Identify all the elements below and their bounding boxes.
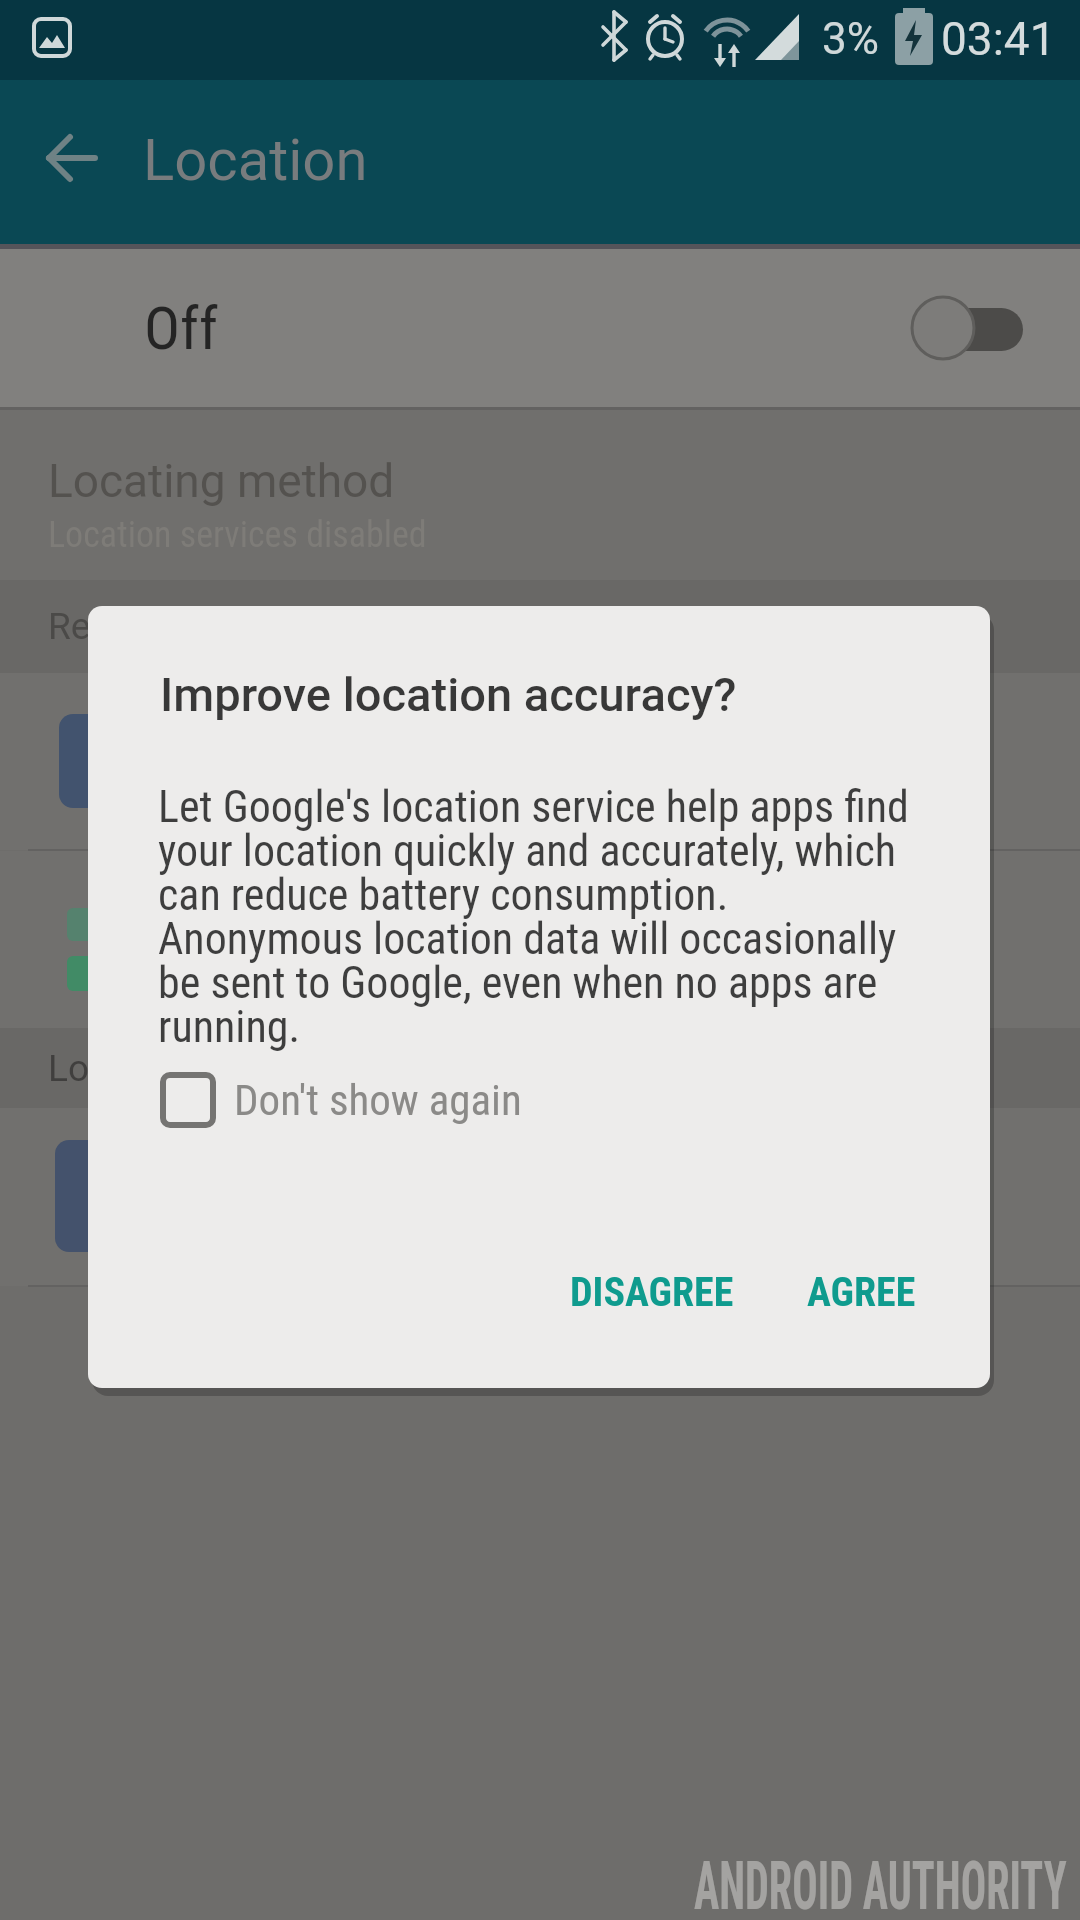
staticText: AGREE (807, 1269, 916, 1316)
staticText: Don't show again (234, 1075, 522, 1125)
staticText: running. (158, 1001, 301, 1053)
staticText: 3% (822, 13, 879, 65)
button[interactable] (46, 132, 98, 184)
staticText: Location services (48, 1047, 337, 1090)
staticText: 03:41 (941, 12, 1056, 66)
staticText: Location services disabled (48, 514, 427, 556)
staticText: ANDROID AUTHORITY (694, 1848, 1067, 1920)
staticText: Location (143, 126, 368, 194)
button[interactable]: Locating method (0, 410, 1080, 580)
staticText: Anonymous location data will occasionall… (158, 913, 897, 965)
staticText: your location quickly and accurately, wh… (158, 825, 897, 877)
staticText: Recent location requests (48, 605, 456, 648)
button[interactable]: AGREE (751, 1252, 971, 1332)
staticText: DISAGREE (570, 1269, 734, 1316)
button[interactable]: Don't show again (160, 1070, 522, 1130)
staticText: can reduce battery consumption. (158, 869, 729, 921)
staticText: Improve location accuracy? (160, 667, 737, 722)
button[interactable]: Off (0, 249, 1080, 407)
staticText: Locating method (48, 454, 395, 508)
staticText: Let Google's location service help apps … (158, 781, 909, 833)
button[interactable]: DISAGREE (492, 1252, 812, 1332)
staticText: be sent to Google, even when no apps are (158, 957, 878, 1009)
staticText: Off (144, 293, 219, 363)
